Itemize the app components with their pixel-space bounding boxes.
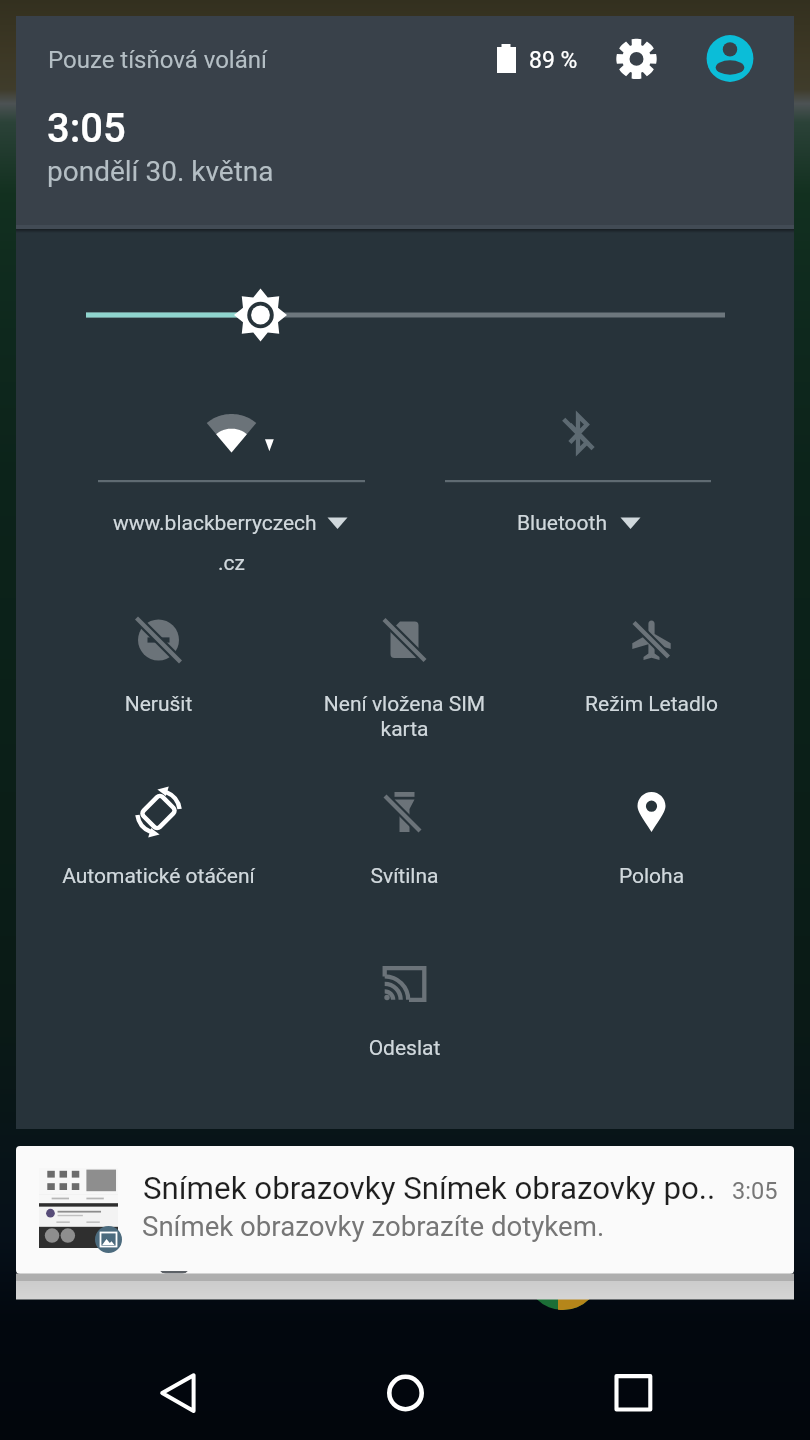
- staticText: Pouze tísňová volání: [48, 46, 267, 74]
- button[interactable]: Svítilna: [281, 766, 528, 938]
- button[interactable]: Snímek obrazovky Snímek obrazovky po..: [16, 1146, 794, 1274]
- staticText: karta: [281, 717, 528, 742]
- staticText: .cz: [98, 551, 365, 576]
- staticText: Nerušit: [35, 692, 282, 717]
- staticText: Snímek obrazovky zobrazíte dotykem.: [142, 1210, 605, 1242]
- staticText: Snímek obrazovky Snímek obrazovky po..: [143, 1170, 716, 1207]
- button[interactable]: Automatické otáčení: [35, 766, 282, 938]
- staticText: 89 %: [529, 47, 578, 74]
- button[interactable]: Settings: [613, 34, 661, 82]
- button[interactable]: Poloha: [528, 766, 775, 938]
- button[interactable]: Režim Letadlo: [528, 594, 775, 766]
- staticText: Bluetooth: [517, 511, 607, 536]
- button[interactable]: Není vložena SIM: [281, 594, 528, 766]
- staticText: Odeslat: [281, 1036, 528, 1061]
- button[interactable]: Odeslat: [281, 938, 528, 1110]
- button[interactable]: User profile: [706, 34, 754, 82]
- staticText: Svítilna: [281, 864, 528, 889]
- staticText: Automatické otáčení: [35, 864, 282, 889]
- staticText: Režim Letadlo: [528, 692, 775, 717]
- staticText: Není vložena SIM: [281, 692, 528, 717]
- button[interactable]: Home: [365, 1367, 445, 1419]
- button[interactable]: www.blackberryczech: [98, 400, 365, 585]
- staticText: pondělí 30. května: [47, 155, 274, 188]
- staticText: www.blackberryczech: [113, 511, 317, 536]
- button[interactable]: Bluetooth: [445, 400, 711, 585]
- button[interactable]: Back: [138, 1367, 218, 1419]
- staticText: Poloha: [528, 864, 775, 889]
- staticText: 3:05: [732, 1177, 778, 1205]
- button[interactable]: Brightness: [60, 288, 750, 344]
- button[interactable]: Nerušit: [35, 594, 282, 766]
- staticText: 3:05: [47, 105, 126, 152]
- button[interactable]: Recent apps: [593, 1367, 673, 1419]
